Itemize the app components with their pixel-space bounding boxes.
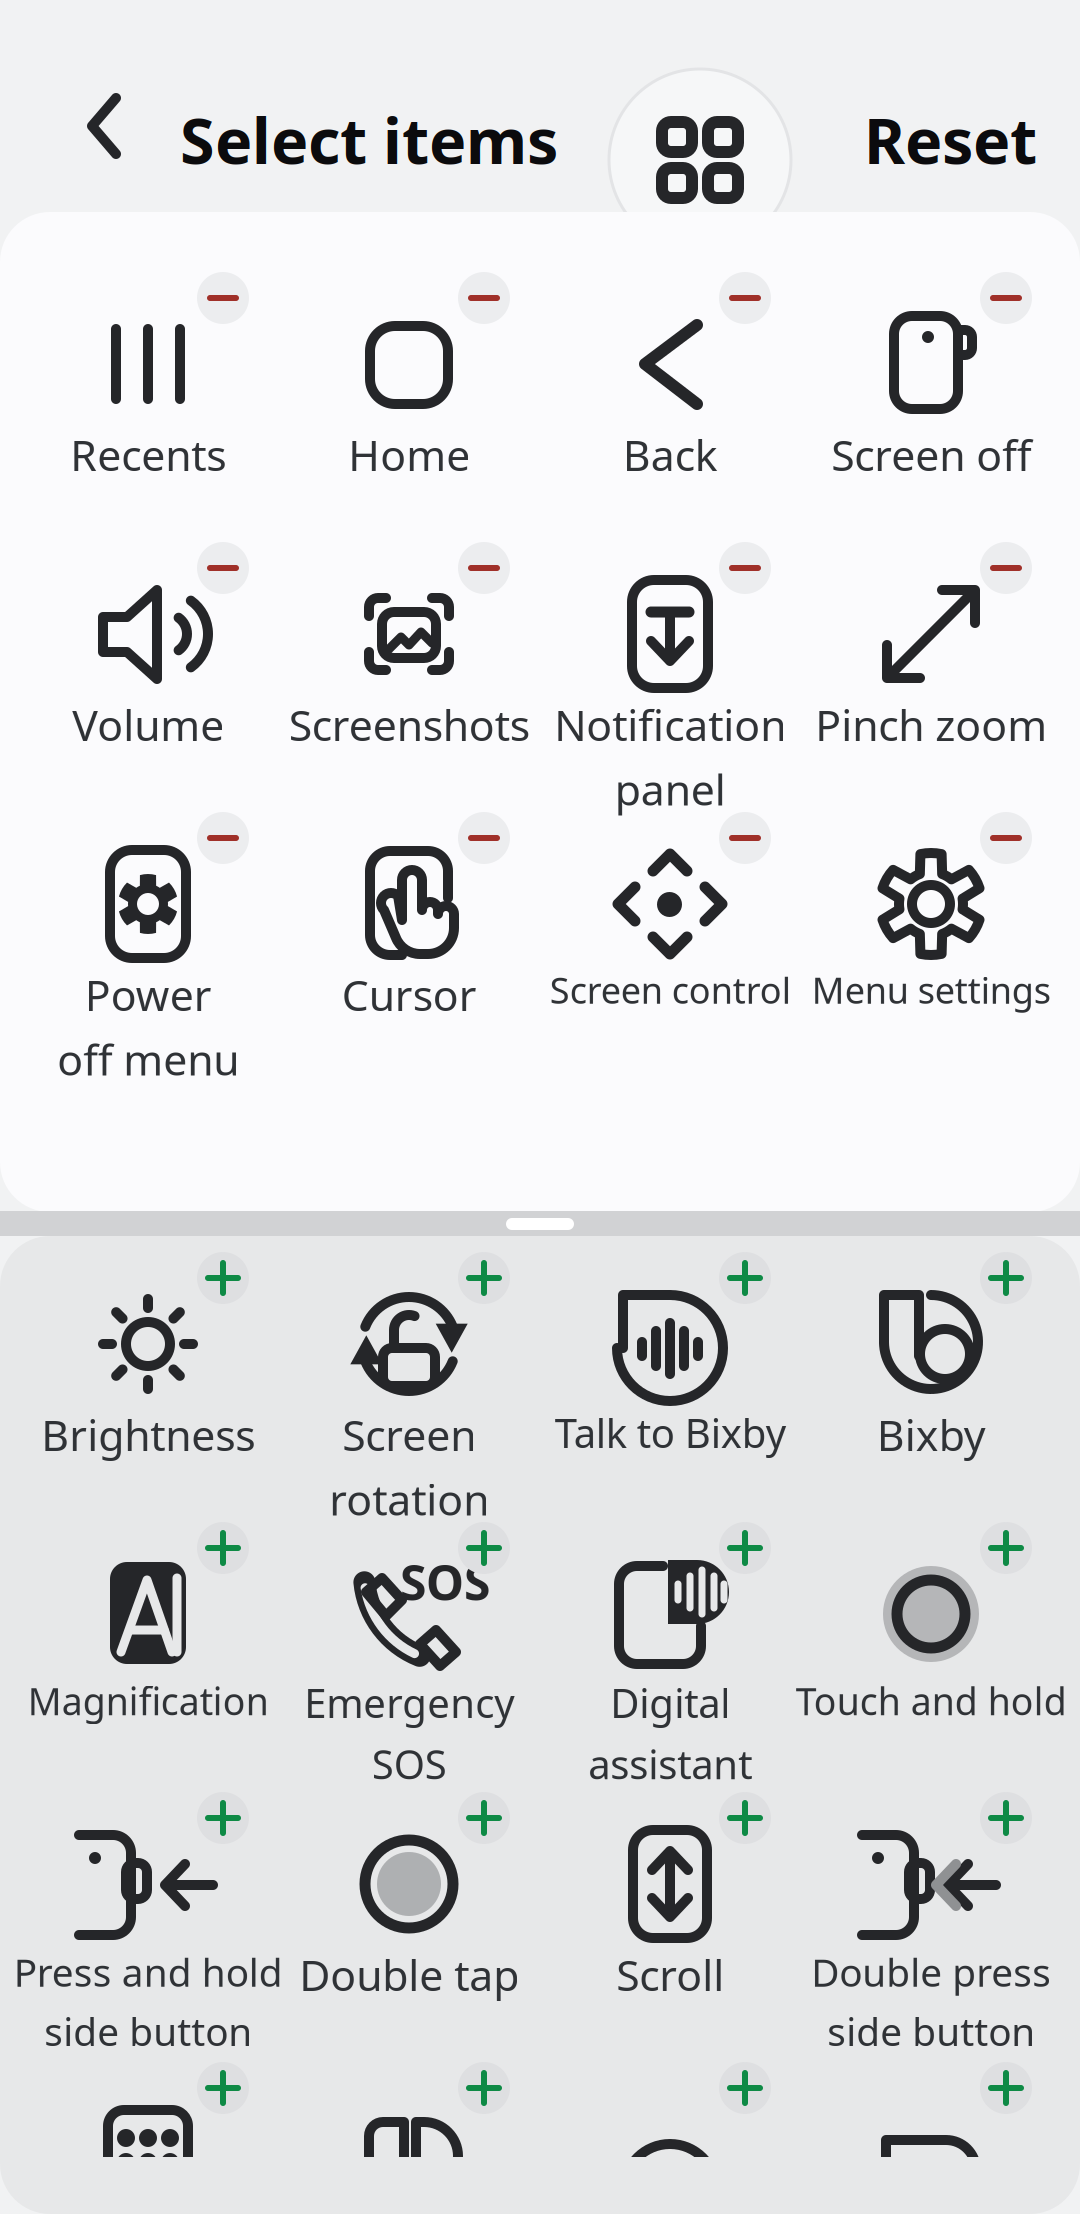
- button[interactable]: Digital assistant: [539, 1534, 800, 1802]
- staticText: Double tap: [299, 1946, 519, 2003]
- staticText: Reset: [864, 98, 1037, 181]
- staticText: Press and hold side button: [13, 1946, 282, 2057]
- staticText: Brightness: [41, 1406, 255, 1463]
- button[interactable]: Screen control: [539, 824, 800, 1092]
- button[interactable]: Double press side button: [800, 1804, 1061, 2072]
- staticText: SOS: [400, 1550, 490, 1614]
- staticText: Touch and hold: [795, 1676, 1066, 1726]
- staticText: Emergency SOS: [304, 1676, 514, 1790]
- button[interactable]: Power off menu: [17, 824, 278, 1092]
- staticText: Pinch zoom: [815, 696, 1047, 753]
- staticText: Power off menu: [57, 966, 239, 1087]
- staticText: Select items: [180, 98, 558, 181]
- button[interactable]: Grid layout: [609, 69, 791, 251]
- button[interactable]: Pinch zoom: [800, 554, 1061, 822]
- staticText: Screenshots: [288, 696, 529, 753]
- button[interactable]: Magnification: [17, 1534, 278, 1802]
- button[interactable]: [17, 2074, 278, 2214]
- staticText: Home: [348, 426, 470, 483]
- staticText: Menu settings: [811, 966, 1050, 1014]
- button[interactable]: Screenshots: [278, 554, 539, 822]
- staticText: Screen control: [549, 966, 790, 1014]
- button[interactable]: [800, 2074, 1061, 2214]
- staticText: Back: [622, 426, 717, 483]
- button[interactable]: Talk to Bixby: [539, 1264, 800, 1532]
- staticText: Digital assistant: [588, 1676, 752, 1790]
- staticText: Talk to Bixby: [554, 1406, 785, 1459]
- button[interactable]: Reset: [864, 98, 1037, 181]
- button[interactable]: Bixby: [800, 1264, 1061, 1532]
- staticText: Recents: [70, 426, 226, 483]
- button[interactable]: Screen rotation: [278, 1264, 539, 1532]
- button[interactable]: Back: [82, 88, 138, 164]
- staticText: Scroll: [616, 1946, 724, 2003]
- button[interactable]: [278, 2074, 539, 2214]
- staticText: Screen off: [831, 426, 1031, 483]
- button[interactable]: Touch and hold: [800, 1534, 1061, 1802]
- button[interactable]: 6: [539, 2074, 800, 2214]
- button[interactable]: Back: [539, 284, 800, 552]
- button[interactable]: Notification panel: [539, 554, 800, 822]
- button[interactable]: SOS: [278, 1534, 539, 1802]
- staticText: Double press side button: [811, 1946, 1051, 2057]
- staticText: Magnification: [27, 1676, 268, 1726]
- button[interactable]: Cursor: [278, 824, 539, 1092]
- button[interactable]: Volume: [17, 554, 278, 822]
- staticText: Bixby: [876, 1406, 985, 1463]
- staticText: Notification panel: [554, 696, 786, 817]
- staticText: Volume: [72, 696, 224, 753]
- button[interactable]: Press and hold side button: [17, 1804, 278, 2072]
- button[interactable]: Recents: [17, 284, 278, 552]
- button[interactable]: Double tap: [278, 1804, 539, 2072]
- button[interactable]: Home: [278, 284, 539, 552]
- button[interactable]: Menu settings: [800, 824, 1061, 1092]
- button[interactable]: Screen off: [800, 284, 1061, 552]
- staticText: Cursor: [341, 966, 476, 1023]
- button[interactable]: Brightness: [17, 1264, 278, 1532]
- button[interactable]: Scroll: [539, 1804, 800, 2072]
- staticText: Screen rotation: [329, 1406, 489, 1527]
